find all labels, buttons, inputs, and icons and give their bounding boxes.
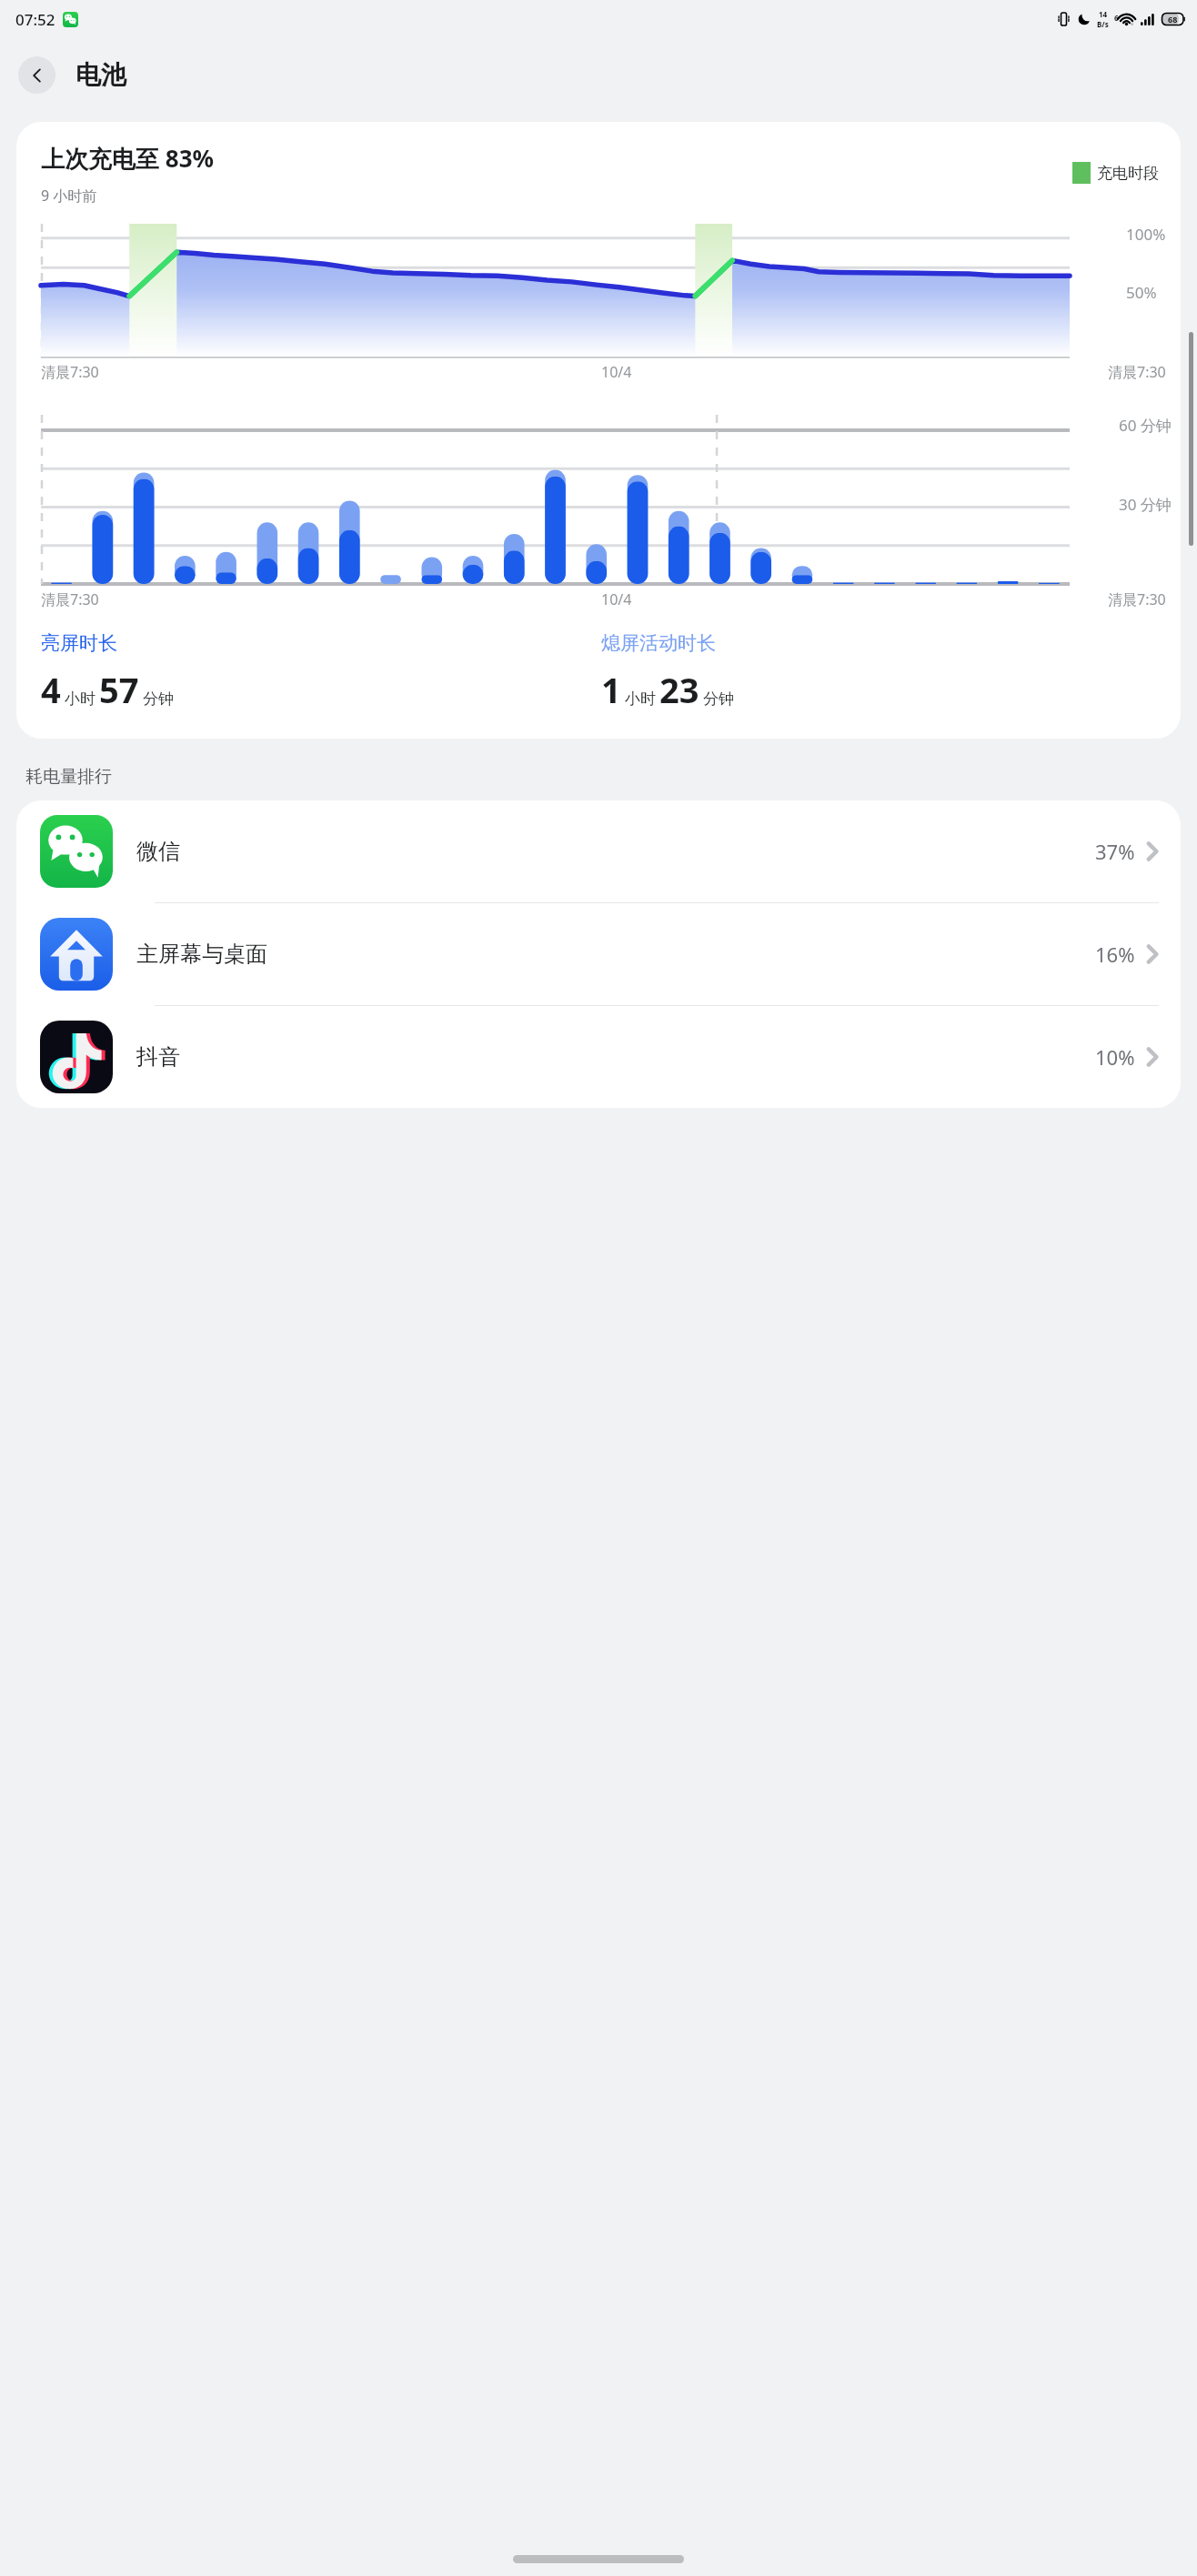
staticText: 30 分钟 <box>1119 494 1172 515</box>
staticText: 16% <box>1095 941 1135 968</box>
staticText: 60 分钟 <box>1119 415 1172 436</box>
staticText: 37% <box>1095 838 1135 865</box>
staticText: 10/4 <box>601 589 632 609</box>
staticText: 小时 <box>65 689 96 709</box>
staticText: 4 <box>41 666 61 713</box>
staticText: 主屏幕与桌面 <box>136 941 267 968</box>
staticText: 07:52 <box>15 9 55 30</box>
staticText: 6 <box>1114 13 1119 23</box>
staticText: 清晨7:30 <box>1108 362 1166 382</box>
staticText: 9 小时前 <box>41 186 97 206</box>
staticText: 亮屏时长 <box>41 631 117 655</box>
staticText: 熄屏活动时长 <box>601 631 716 655</box>
staticText: 微信 <box>136 838 180 865</box>
staticText: 50% <box>1126 282 1157 303</box>
staticText: 清晨7:30 <box>1108 589 1166 609</box>
staticText: B/s <box>1097 19 1109 29</box>
staticText: 充电时段 <box>1097 164 1159 183</box>
staticText: 14 <box>1099 9 1108 19</box>
staticText: 清晨7:30 <box>41 362 99 382</box>
button[interactable]: Back <box>18 56 55 94</box>
staticText: 电池 <box>75 59 126 91</box>
staticText: 68 <box>1168 14 1178 25</box>
button[interactable]: 抖音 <box>16 1006 1181 1108</box>
staticText: 耗电量排行 <box>25 766 112 788</box>
staticText: 57 <box>99 666 139 713</box>
staticText: 1 <box>601 666 621 713</box>
staticText: 清晨7:30 <box>41 589 99 609</box>
staticText: 100% <box>1126 224 1166 245</box>
button[interactable]: 主屏幕与桌面 <box>16 903 1181 1005</box>
staticText: 10% <box>1095 1043 1135 1071</box>
staticText: 小时 <box>625 689 656 709</box>
staticText: 抖音 <box>136 1043 180 1071</box>
staticText: 上次充电至 83% <box>41 142 214 175</box>
button[interactable]: 微信 <box>16 800 1181 902</box>
staticText: 分钟 <box>703 689 734 709</box>
staticText: 23 <box>659 666 699 713</box>
staticText: 10/4 <box>601 362 632 382</box>
staticText: 分钟 <box>143 689 174 709</box>
